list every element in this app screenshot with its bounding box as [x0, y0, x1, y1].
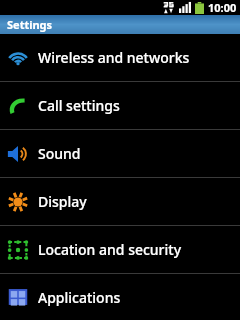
button[interactable]: Sound: [0, 130, 240, 177]
button[interactable]: Location and security: [0, 226, 240, 273]
other: Wireless and networks: [7, 47, 29, 69]
other: Display: [7, 191, 29, 213]
other: Applications: [7, 286, 29, 308]
other: Call settings: [7, 95, 29, 117]
staticText: Display: [38, 192, 87, 211]
other: Sound: [7, 143, 29, 165]
button[interactable]: Wireless and networks: [0, 34, 240, 81]
staticText: Sound: [38, 144, 81, 163]
staticText: Wireless and networks: [38, 48, 190, 67]
other: Location and security: [7, 239, 29, 261]
button[interactable]: Applications: [0, 274, 240, 320]
staticText: Applications: [38, 288, 121, 307]
staticText: Location and security: [38, 240, 182, 259]
button[interactable]: Call settings: [0, 82, 240, 129]
staticText: 10:00: [208, 0, 237, 15]
staticText: Settings: [7, 17, 53, 32]
button[interactable]: Display: [0, 178, 240, 225]
staticText: Call settings: [38, 96, 120, 115]
